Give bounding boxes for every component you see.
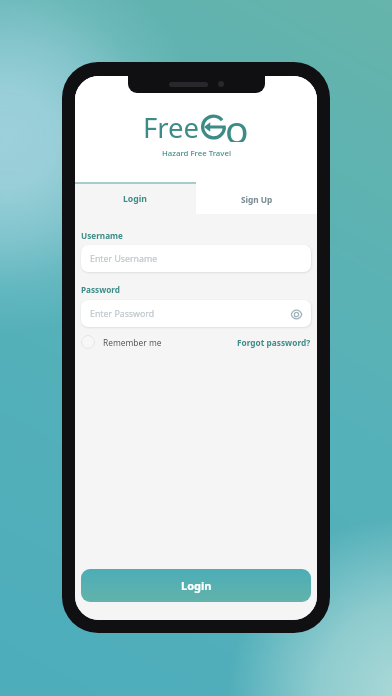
staticText: Login xyxy=(181,578,212,593)
staticText: Sign Up xyxy=(241,194,273,205)
button[interactable]: Enter Username xyxy=(81,245,311,272)
staticText: Enter Username xyxy=(90,253,158,265)
button[interactable]: Remember me xyxy=(81,333,162,351)
staticText: Hazard Free Travel xyxy=(162,148,231,159)
staticText: Forgot password? xyxy=(237,337,311,348)
staticText: o xyxy=(225,102,249,142)
button[interactable]: Sign Up xyxy=(196,182,317,214)
button[interactable]: Toggle password visibility xyxy=(288,306,304,322)
staticText: Remember me xyxy=(103,337,162,348)
button[interactable]: Enter Password xyxy=(81,300,311,327)
button[interactable]: Login xyxy=(75,182,196,214)
staticText: Free xyxy=(143,109,200,146)
button[interactable]: Login xyxy=(81,569,311,602)
staticText: Login xyxy=(123,193,148,205)
staticText: Enter Password xyxy=(90,308,155,320)
button[interactable]: Forgot password? xyxy=(237,333,311,351)
staticText: Password xyxy=(81,284,121,295)
staticText: Username xyxy=(81,230,123,241)
